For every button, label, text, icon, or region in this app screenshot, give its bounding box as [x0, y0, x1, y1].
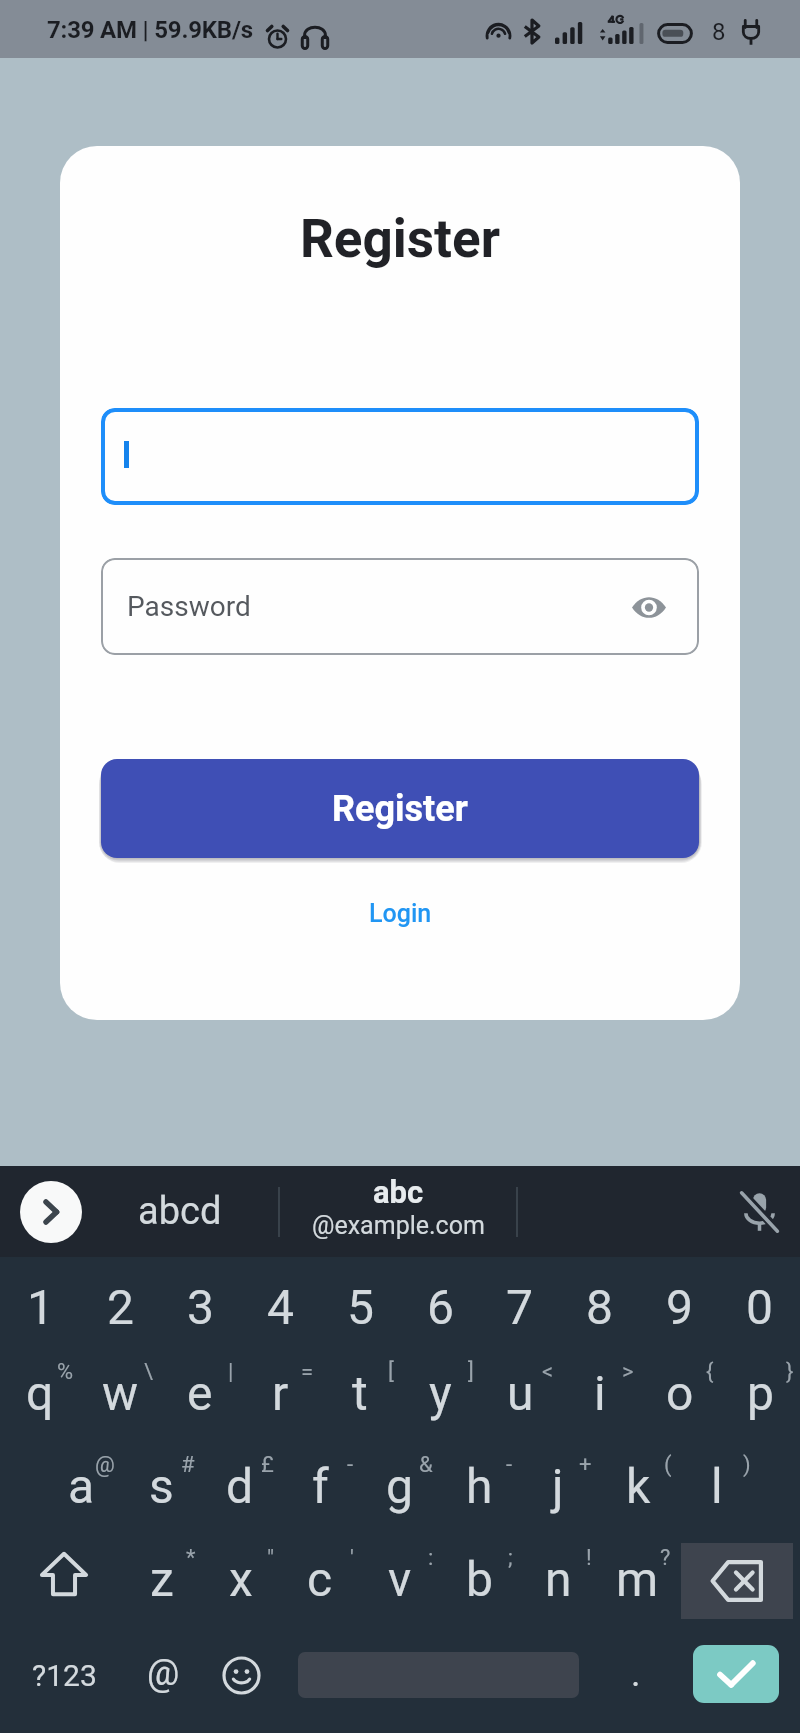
button[interactable]: 7	[479, 1261, 559, 1354]
staticText: 7:39 AM | 59.9KB/s	[47, 16, 253, 44]
staticText: #	[181, 1452, 195, 1478]
button[interactable]: 9	[639, 1261, 719, 1354]
button[interactable]: d	[200, 1434, 280, 1527]
staticText: !	[586, 1545, 592, 1571]
staticText: @	[147, 1652, 180, 1694]
staticText: {	[706, 1359, 714, 1385]
staticText: r	[272, 1365, 289, 1421]
button[interactable]: 6	[400, 1261, 480, 1354]
staticText: ;	[508, 1545, 513, 1571]
staticText: Login	[369, 899, 432, 928]
staticText: abcd	[138, 1189, 222, 1234]
staticText: i	[594, 1365, 606, 1421]
staticText: Password	[127, 590, 251, 623]
button[interactable]	[101, 408, 699, 505]
button[interactable]: 8	[559, 1261, 639, 1354]
button[interactable]: Show password	[623, 581, 675, 633]
staticText: h	[466, 1458, 493, 1514]
staticText: t	[352, 1365, 368, 1421]
button[interactable]: 5	[320, 1261, 400, 1354]
button[interactable]: h	[439, 1434, 519, 1527]
button[interactable]: abc	[280, 1166, 516, 1257]
staticText: b	[466, 1551, 493, 1607]
staticText: abc	[373, 1174, 424, 1210]
button[interactable]: o	[640, 1341, 720, 1434]
button[interactable]: n	[518, 1527, 598, 1620]
button[interactable]: i	[560, 1341, 640, 1434]
button[interactable]: 0	[719, 1261, 799, 1354]
button[interactable]: u	[480, 1341, 560, 1434]
staticText: 7	[506, 1279, 533, 1335]
button[interactable]: f	[280, 1434, 360, 1527]
button[interactable]: e	[160, 1341, 240, 1434]
button[interactable]: j	[518, 1434, 598, 1527]
button[interactable]: p	[720, 1341, 800, 1434]
staticText: u	[507, 1365, 534, 1421]
staticText: o	[666, 1365, 694, 1421]
staticText: (	[664, 1452, 672, 1478]
staticText: '	[350, 1545, 354, 1571]
staticText: .	[631, 1653, 641, 1695]
button[interactable]: b	[439, 1527, 519, 1620]
staticText: 9	[666, 1279, 693, 1335]
button[interactable]: m	[597, 1527, 677, 1620]
staticText: j	[552, 1458, 564, 1514]
staticText: %	[57, 1359, 74, 1385]
button[interactable]: v	[360, 1527, 440, 1620]
staticText: n	[545, 1551, 572, 1607]
button[interactable]: g	[359, 1434, 439, 1527]
button[interactable]: Login	[353, 891, 448, 936]
button[interactable]: Expand toolbar	[20, 1181, 82, 1243]
staticText: |	[228, 1359, 234, 1385]
button[interactable]: 2	[80, 1261, 160, 1354]
button[interactable]: Password	[101, 558, 699, 655]
staticText: p	[747, 1365, 774, 1421]
button[interactable]: a	[41, 1434, 121, 1527]
button[interactable]: abcd	[82, 1166, 278, 1257]
button[interactable]: s	[121, 1434, 201, 1527]
staticText: £	[261, 1452, 274, 1478]
staticText: 8	[712, 18, 726, 46]
button[interactable]: 3	[160, 1261, 240, 1354]
button[interactable]: Emoji	[203, 1629, 279, 1722]
button[interactable]: Enter	[693, 1645, 779, 1703]
staticText: 8	[586, 1279, 613, 1335]
button[interactable]: Shift	[16, 1527, 112, 1620]
staticText: 1	[27, 1279, 54, 1335]
staticText: m	[616, 1551, 659, 1607]
button[interactable]: c	[280, 1527, 360, 1620]
button[interactable]: .	[598, 1629, 674, 1722]
staticText: d	[226, 1458, 254, 1514]
staticText: :	[428, 1545, 434, 1571]
button[interactable]: ?123	[6, 1629, 122, 1722]
button[interactable]: k	[598, 1434, 678, 1527]
button[interactable]: w	[80, 1341, 160, 1434]
staticText: ]	[468, 1359, 474, 1385]
staticText: 2	[107, 1279, 134, 1335]
button[interactable]: Register	[101, 759, 699, 858]
staticText: 5	[347, 1279, 374, 1335]
button[interactable]: Voice input disabled	[727, 1180, 791, 1244]
button[interactable]: y	[400, 1341, 480, 1434]
staticText: w	[102, 1365, 139, 1421]
staticText: 0	[746, 1279, 773, 1335]
staticText: s	[149, 1458, 174, 1514]
button[interactable]: r	[240, 1341, 320, 1434]
staticText: <	[542, 1359, 554, 1385]
button[interactable]: z	[122, 1527, 202, 1620]
staticText: Register	[300, 208, 500, 270]
staticText: y	[429, 1365, 452, 1421]
button[interactable]: q	[0, 1341, 80, 1434]
button[interactable]: Backspace	[681, 1543, 793, 1619]
staticText: =	[301, 1359, 314, 1385]
button[interactable]: l	[677, 1434, 757, 1527]
button[interactable]: 1	[0, 1261, 80, 1354]
button[interactable]: t	[320, 1341, 400, 1434]
staticText: +	[579, 1452, 592, 1478]
button[interactable]: x	[201, 1527, 281, 1620]
button[interactable]: 4	[240, 1261, 320, 1354]
button[interactable]: @	[125, 1629, 201, 1722]
staticText: 4	[267, 1279, 294, 1335]
staticText: k	[626, 1458, 651, 1514]
